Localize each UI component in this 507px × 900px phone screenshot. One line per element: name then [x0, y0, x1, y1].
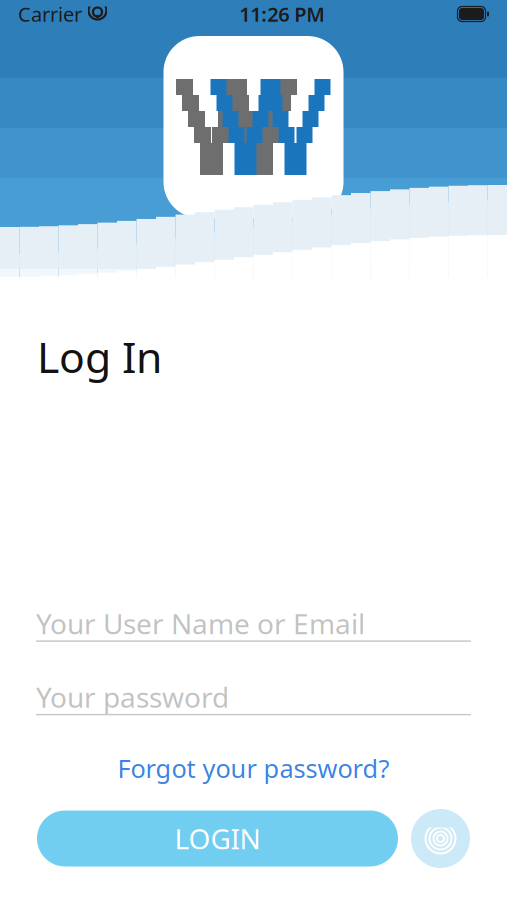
- staticText: 11:26 PM: [239, 1, 325, 27]
- button[interactable]: Your User Name or Email: [36, 606, 471, 642]
- staticText: Carrier: [18, 1, 82, 27]
- button[interactable]: LOGIN: [37, 810, 398, 866]
- staticText: LOGIN: [174, 820, 260, 857]
- staticText: Log In: [37, 328, 162, 385]
- staticText: Forgot your password?: [117, 751, 389, 785]
- staticText: Your User Name or Email: [36, 605, 365, 642]
- button[interactable]: Sign in with Touch ID: [411, 809, 470, 868]
- button[interactable]: Your password: [36, 680, 471, 715]
- staticText: Your password: [36, 678, 229, 715]
- button[interactable]: Forgot your password?: [107, 745, 399, 791]
